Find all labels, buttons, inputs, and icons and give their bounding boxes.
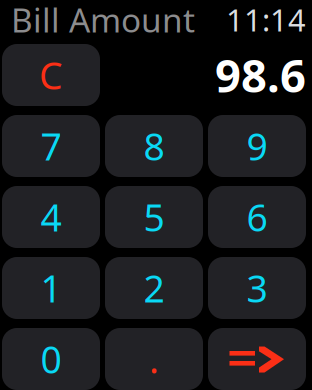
button[interactable]: 5 <box>105 186 203 248</box>
button[interactable]: 9 <box>208 115 306 177</box>
staticText: . <box>149 334 159 384</box>
button[interactable]: Calculate <box>208 328 306 390</box>
button[interactable]: . <box>105 328 203 390</box>
staticText: 5 <box>143 192 164 242</box>
button[interactable]: 8 <box>105 115 203 177</box>
staticText: 6 <box>246 192 267 242</box>
staticText: 9 <box>246 121 267 171</box>
button[interactable]: 7 <box>2 115 100 177</box>
staticText: 11:14 <box>226 0 306 40</box>
button[interactable]: 3 <box>208 257 306 319</box>
button[interactable]: 6 <box>208 186 306 248</box>
button[interactable]: 0 <box>2 328 100 390</box>
staticText: 7 <box>40 121 61 171</box>
button[interactable]: 1 <box>2 257 100 319</box>
staticText: 8 <box>143 121 164 171</box>
button[interactable]: 2 <box>105 257 203 319</box>
staticText: 2 <box>143 263 164 313</box>
staticText: 4 <box>40 192 61 242</box>
staticText: 1 <box>40 263 61 313</box>
staticText: 3 <box>246 263 267 313</box>
button[interactable]: C <box>2 44 100 106</box>
staticText: C <box>39 50 63 100</box>
staticText: 0 <box>40 334 61 384</box>
button[interactable]: 4 <box>2 186 100 248</box>
staticText: Bill Amount <box>11 0 195 42</box>
staticText: 98.6 <box>215 45 306 105</box>
